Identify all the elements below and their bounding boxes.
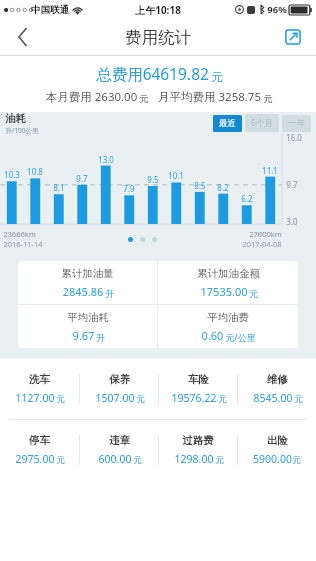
staticText: 1507.00 [94,391,136,405]
button[interactable]: 一年 [282,115,311,132]
staticText: 元 [218,394,227,405]
staticText: 一年 [288,118,305,129]
staticText: 10.8 [27,166,43,177]
staticText: 元 [263,93,273,105]
staticText: 9.7 [286,179,298,190]
staticText: 过路费 [182,434,214,447]
staticText: 上午10:18 [135,3,181,17]
button[interactable]: 平均油耗 [18,305,157,348]
staticText: 23666km [3,229,36,239]
staticText: 本月费用 2630.00 [44,89,139,105]
staticText: 中国联通 [31,4,69,16]
button[interactable]: 过路费 [159,420,237,480]
staticText: 元 [249,288,258,299]
staticText: 7.9 [123,183,135,194]
staticText: 维修 [267,373,288,386]
staticText: 累计加油金额 [197,267,260,280]
staticText: 2975.00 [14,452,56,466]
staticText: 8545.00 [252,391,294,405]
staticText: 96% [267,3,287,16]
staticText: 升 [105,288,114,299]
button[interactable]: 违章 [80,420,158,480]
button[interactable]: Share [270,19,316,55]
staticText: 停车 [29,434,50,447]
staticText: 最近 [219,118,236,129]
staticText: 600.00 [97,452,133,466]
staticText: 2845.86 [61,284,105,299]
staticText: 累计加油量 [61,267,114,280]
staticText: 元 [215,455,224,466]
staticText: 8.2 [217,182,229,193]
staticText: 车险 [188,373,209,386]
staticText: 2017-04-08 [242,239,282,249]
staticText: 费用统计 [125,27,191,48]
staticText: 元 [292,455,301,466]
staticText: 8.5 [194,180,206,191]
button[interactable]: 出险 [238,420,316,480]
button[interactable]: 停车 [0,420,79,480]
staticText: 9.67 [71,328,96,343]
staticText: 元 [294,394,303,405]
staticText: 6.2 [241,193,253,204]
staticText: 10.3 [4,169,20,180]
staticText: 19576.22 [170,391,218,405]
button[interactable]: 累计加油量 [18,261,157,304]
staticText: 洗车 [29,373,50,386]
staticText: 元/公里 [225,331,256,343]
staticText: 保养 [109,373,130,386]
staticText: 平均油费 [207,311,249,324]
button[interactable]: 累计加油金额 [158,261,298,304]
staticText: 升/100公里 [5,126,39,134]
button[interactable]: 车险 [159,359,237,419]
staticText: 1298.00 [173,452,215,466]
staticText: 8.1 [53,182,65,193]
staticText: 6个月 [251,117,273,129]
button[interactable]: Back [0,19,46,55]
staticText: 27600km [249,229,282,239]
staticText: 平均油耗 [67,311,109,324]
staticText: 元 [133,455,142,466]
button[interactable]: 洗车 [0,359,79,419]
staticText: 升 [96,332,105,343]
staticText: 月平均费用 3258.75 [156,89,263,105]
staticText: 13.0 [98,154,114,165]
staticText: 11.1 [262,165,278,176]
staticText: 违章 [109,434,130,447]
staticText: 1127.00 [14,391,56,405]
button[interactable]: 保养 [80,359,158,419]
button[interactable]: 6个月 [245,114,279,132]
staticText: 2016-11-14 [3,239,43,249]
button[interactable]: 平均油费 [158,305,298,348]
staticText: 16.0 [286,132,302,143]
staticText: 9.5 [147,174,159,185]
staticText: 0.60 [200,328,225,343]
staticText: 元 [56,394,65,405]
staticText: 3.0 [286,216,298,227]
staticText: 17535.00 [199,284,249,299]
staticText: 元 [136,394,145,405]
staticText: 总费用64619.82 [94,63,211,84]
staticText: 元 [139,93,149,105]
staticText: 元 [211,70,223,84]
staticText: 5900.00 [253,452,292,466]
staticText: 出险 [267,434,288,447]
staticText: 9.7 [76,173,88,184]
button[interactable]: 最近 [213,115,242,132]
staticText: 10.1 [168,170,184,181]
staticText: 元 [56,455,65,466]
button[interactable]: 维修 [238,359,316,419]
staticText: 油耗 [5,112,26,125]
